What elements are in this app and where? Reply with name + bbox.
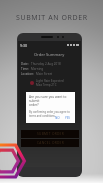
button[interactable]: CANCEL ORDER	[21, 139, 79, 147]
staticText: Morning	[31, 67, 44, 71]
staticText: SUBMIT ORDER	[37, 132, 64, 136]
staticText: Light Rain Expected	[36, 79, 64, 83]
staticText: Thursday 2 Aug 2018	[31, 62, 61, 66]
staticText: Location:	[21, 72, 34, 76]
staticText: order?	[29, 103, 39, 107]
staticText: NO	[55, 116, 60, 120]
staticText: Order Summary	[34, 52, 65, 57]
staticText: Main Street	[36, 72, 53, 76]
staticText: 9:30	[20, 43, 27, 48]
staticText: CANCEL ORDER	[37, 141, 64, 145]
staticText: YES	[65, 116, 71, 120]
staticText: Are you sure you want to submit	[29, 95, 72, 103]
staticText: Time:	[21, 67, 29, 71]
staticText: Max Temp 21C	[36, 83, 57, 87]
staticText: Date:	[21, 62, 29, 66]
staticText: Payment Method	[36, 91, 64, 96]
staticText: SUBMIT AN ORDER	[16, 13, 88, 23]
button[interactable]: NO	[54, 115, 61, 121]
other: Brand logo	[0, 141, 26, 181]
button[interactable]: SUBMIT ORDER	[21, 130, 79, 138]
button[interactable]: YES	[64, 115, 72, 121]
staticText: terms and conditions.	[29, 114, 56, 118]
staticText: By confirming order, you agree to	[29, 110, 70, 114]
